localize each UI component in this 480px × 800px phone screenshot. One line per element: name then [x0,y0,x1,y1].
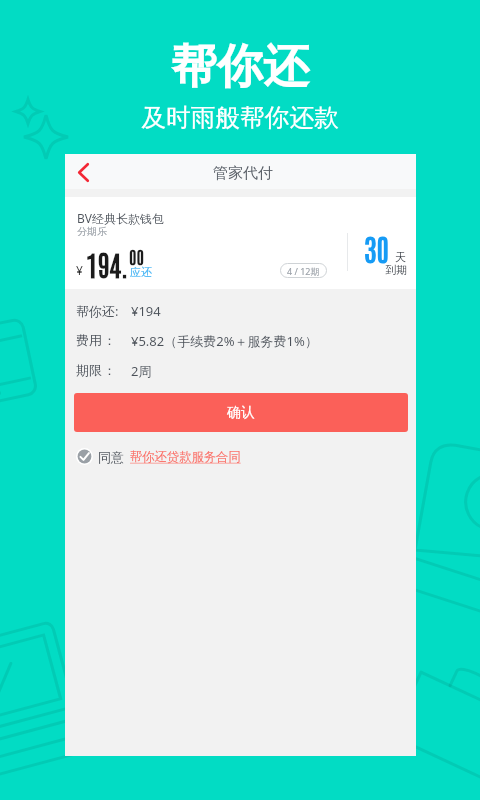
staticText: 194. [86,246,129,282]
staticText: 管家代付 [213,164,273,183]
staticText: 费用 [76,332,102,348]
staticText: 帮你还: [76,302,119,320]
staticText: ： [103,332,116,348]
staticText: 00 [129,244,145,267]
staticText: ¥ [76,262,83,278]
staticText: 帮你还 [0,38,480,96]
staticText: 同意 [98,449,124,465]
staticText: 天 [395,250,406,264]
staticText: ¥194 [131,302,161,320]
staticText: 分期乐 [77,225,107,238]
staticText: 2周 [131,362,152,380]
button[interactable]: 同意 [76,448,241,465]
button[interactable]: Back [67,156,99,188]
staticText: 应还 [130,265,152,279]
staticText: BV经典长款钱包 [77,210,165,226]
staticText: ： [103,362,116,378]
staticText: 4 / 12期 [287,265,320,277]
button[interactable]: 确认 [74,393,408,432]
staticText: 确认 [227,404,255,422]
staticText: 30 [364,228,390,267]
staticText: ¥5.82（手续费2%＋服务费1%） [131,332,318,350]
staticText: 及时雨般帮你还款 [0,102,480,133]
staticText: 期限 [76,362,102,378]
staticText: 到期 [385,263,407,277]
staticText: 帮你还贷款服务合同 [130,449,241,464]
